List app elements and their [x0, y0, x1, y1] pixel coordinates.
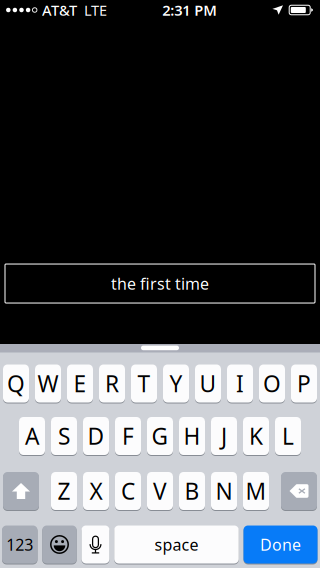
button[interactable]: space	[114, 525, 239, 564]
button[interactable]: U	[195, 364, 221, 403]
button[interactable]: T	[131, 364, 157, 403]
staticText: AT&T	[42, 0, 77, 20]
staticText: H	[183, 421, 200, 451]
button[interactable]: F	[115, 416, 141, 455]
button[interactable]: W	[35, 364, 61, 403]
staticText: X	[89, 476, 102, 506]
button[interactable]: E	[67, 364, 93, 403]
button[interactable]: H	[179, 416, 205, 455]
button[interactable]: Q	[3, 364, 29, 403]
button[interactable]: K	[243, 416, 269, 455]
staticText: T	[137, 368, 150, 398]
button[interactable]: P	[291, 364, 317, 403]
button[interactable]: N	[211, 471, 237, 510]
staticText: J	[221, 421, 227, 451]
button[interactable]: R	[99, 364, 125, 403]
button[interactable]: Emoji	[42, 525, 77, 564]
button[interactable]: 123	[2, 525, 37, 564]
button[interactable]: X	[83, 471, 109, 510]
staticText: A	[25, 421, 39, 451]
button[interactable]: Shift	[3, 471, 39, 510]
staticText: G	[151, 421, 168, 451]
staticText: Y	[169, 368, 182, 398]
button[interactable]: G	[147, 416, 173, 455]
button[interactable]: L	[275, 416, 301, 455]
staticText: E	[73, 368, 86, 398]
staticText: K	[249, 421, 263, 451]
button[interactable]: Y	[163, 364, 189, 403]
staticText: M	[245, 476, 266, 506]
button[interactable]: S	[51, 416, 77, 455]
staticText: W	[37, 368, 58, 398]
button[interactable]: the first time	[5, 264, 315, 303]
staticText: Done	[260, 534, 301, 555]
staticText: Q	[7, 368, 25, 398]
staticText: N	[215, 476, 232, 506]
button[interactable]: V	[147, 471, 173, 510]
button[interactable]: O	[259, 364, 285, 403]
button[interactable]: C	[115, 471, 141, 510]
staticText: B	[184, 476, 199, 506]
button[interactable]: Delete	[281, 471, 317, 510]
staticText: R	[105, 368, 119, 398]
button[interactable]: Z	[51, 471, 77, 510]
staticText: L	[282, 421, 294, 451]
staticText: D	[87, 421, 104, 451]
button[interactable]: A	[19, 416, 45, 455]
staticText: U	[199, 368, 216, 398]
staticText: Z	[57, 476, 70, 506]
staticText: S	[58, 421, 70, 451]
button[interactable]: Dictation	[81, 525, 109, 564]
staticText: P	[297, 368, 311, 398]
staticText: LTE	[84, 0, 107, 20]
staticText: V	[153, 476, 167, 506]
staticText: the first time	[111, 273, 209, 294]
staticText: F	[122, 421, 134, 451]
button[interactable]: M	[243, 471, 269, 510]
staticText: O	[263, 368, 281, 398]
staticText: I	[236, 368, 244, 398]
staticText: C	[121, 476, 135, 506]
button[interactable]: I	[227, 364, 253, 403]
staticText: 2:31 PM	[162, 0, 217, 20]
button[interactable]: D	[83, 416, 109, 455]
button[interactable]: Done	[243, 525, 317, 564]
staticText: 123	[6, 534, 33, 555]
button[interactable]: B	[179, 471, 205, 510]
button[interactable]: J	[211, 416, 237, 455]
staticText: space	[154, 534, 198, 555]
